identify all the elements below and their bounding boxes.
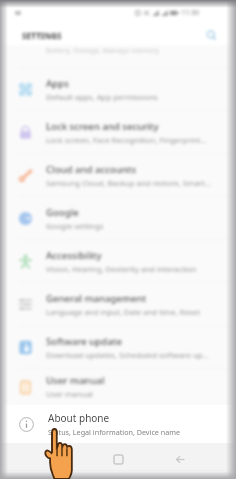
- button[interactable]: About phone: [0, 405, 236, 443]
- staticText: User manual: [46, 389, 93, 400]
- staticText: About phone: [48, 411, 110, 425]
- staticText: Default apps, App permissions: [46, 92, 158, 103]
- staticText: Cloud and accounts: [46, 163, 137, 176]
- button[interactable]: General management: [0, 283, 236, 326]
- button[interactable]: Back: [169, 448, 191, 470]
- button[interactable]: User manual: [0, 369, 236, 405]
- button[interactable]: Cloud and accounts: [0, 154, 236, 197]
- staticText: 11:30: [181, 8, 199, 18]
- staticText: User manual: [46, 374, 105, 387]
- button[interactable]: Battery, Storage, Manage memory: [0, 45, 236, 68]
- staticText: Accessibility: [46, 249, 102, 262]
- button[interactable]: Apps: [0, 68, 236, 111]
- button[interactable]: Search: [204, 28, 219, 43]
- staticText: Status, Legal information, Device name: [48, 427, 181, 437]
- staticText: Vision, Hearing, Dexterity and interacti…: [46, 264, 197, 275]
- staticText: Samsung Cloud, Backup and restore, Smart…: [46, 178, 212, 189]
- staticText: SETTINGS: [22, 30, 62, 41]
- staticText: Language and input, Date and time, Reset: [46, 307, 201, 318]
- staticText: Battery, Storage, Manage memory: [46, 46, 159, 56]
- staticText: Download updates, Scheduled software up.…: [46, 350, 209, 361]
- staticText: Google: [46, 206, 79, 219]
- button[interactable]: Software update: [0, 326, 236, 369]
- staticText: Apps: [46, 77, 69, 90]
- button[interactable]: Lock screen and security: [0, 111, 236, 154]
- button[interactable]: Home: [107, 448, 129, 470]
- staticText: Software update: [46, 335, 122, 348]
- staticText: Lock screen and security: [46, 120, 159, 133]
- button[interactable]: Google: [0, 197, 236, 240]
- button[interactable]: Accessibility: [0, 240, 236, 283]
- button[interactable]: Recents: [42, 448, 64, 470]
- staticText: General management: [46, 292, 147, 305]
- staticText: Google settings: [46, 221, 104, 232]
- staticText: Lock screen, Face Recognition, Fingerpri…: [46, 135, 207, 146]
